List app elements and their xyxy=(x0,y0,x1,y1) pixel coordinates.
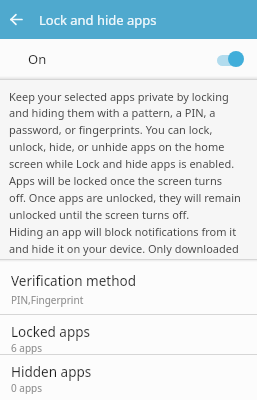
button[interactable]: Locked apps xyxy=(0,315,257,354)
button[interactable]: On xyxy=(0,39,257,79)
button[interactable] xyxy=(217,51,244,67)
staticText: 6 apps xyxy=(11,341,43,354)
staticText: Locked apps xyxy=(11,323,91,341)
button[interactable]: Verification method xyxy=(0,260,257,314)
staticText: Keep your selected apps private by locki… xyxy=(9,89,241,257)
staticText: PIN,Fingerprint xyxy=(11,293,84,307)
staticText: On xyxy=(28,50,47,68)
button[interactable]: Lock and hide apps xyxy=(0,0,257,39)
staticText: 0 apps xyxy=(11,381,43,394)
button[interactable]: Hidden apps xyxy=(0,355,257,394)
button[interactable] xyxy=(11,14,22,25)
staticText: Verification method xyxy=(11,272,136,290)
staticText: Lock and hide apps xyxy=(39,11,157,29)
staticText: Hidden apps xyxy=(11,363,92,381)
